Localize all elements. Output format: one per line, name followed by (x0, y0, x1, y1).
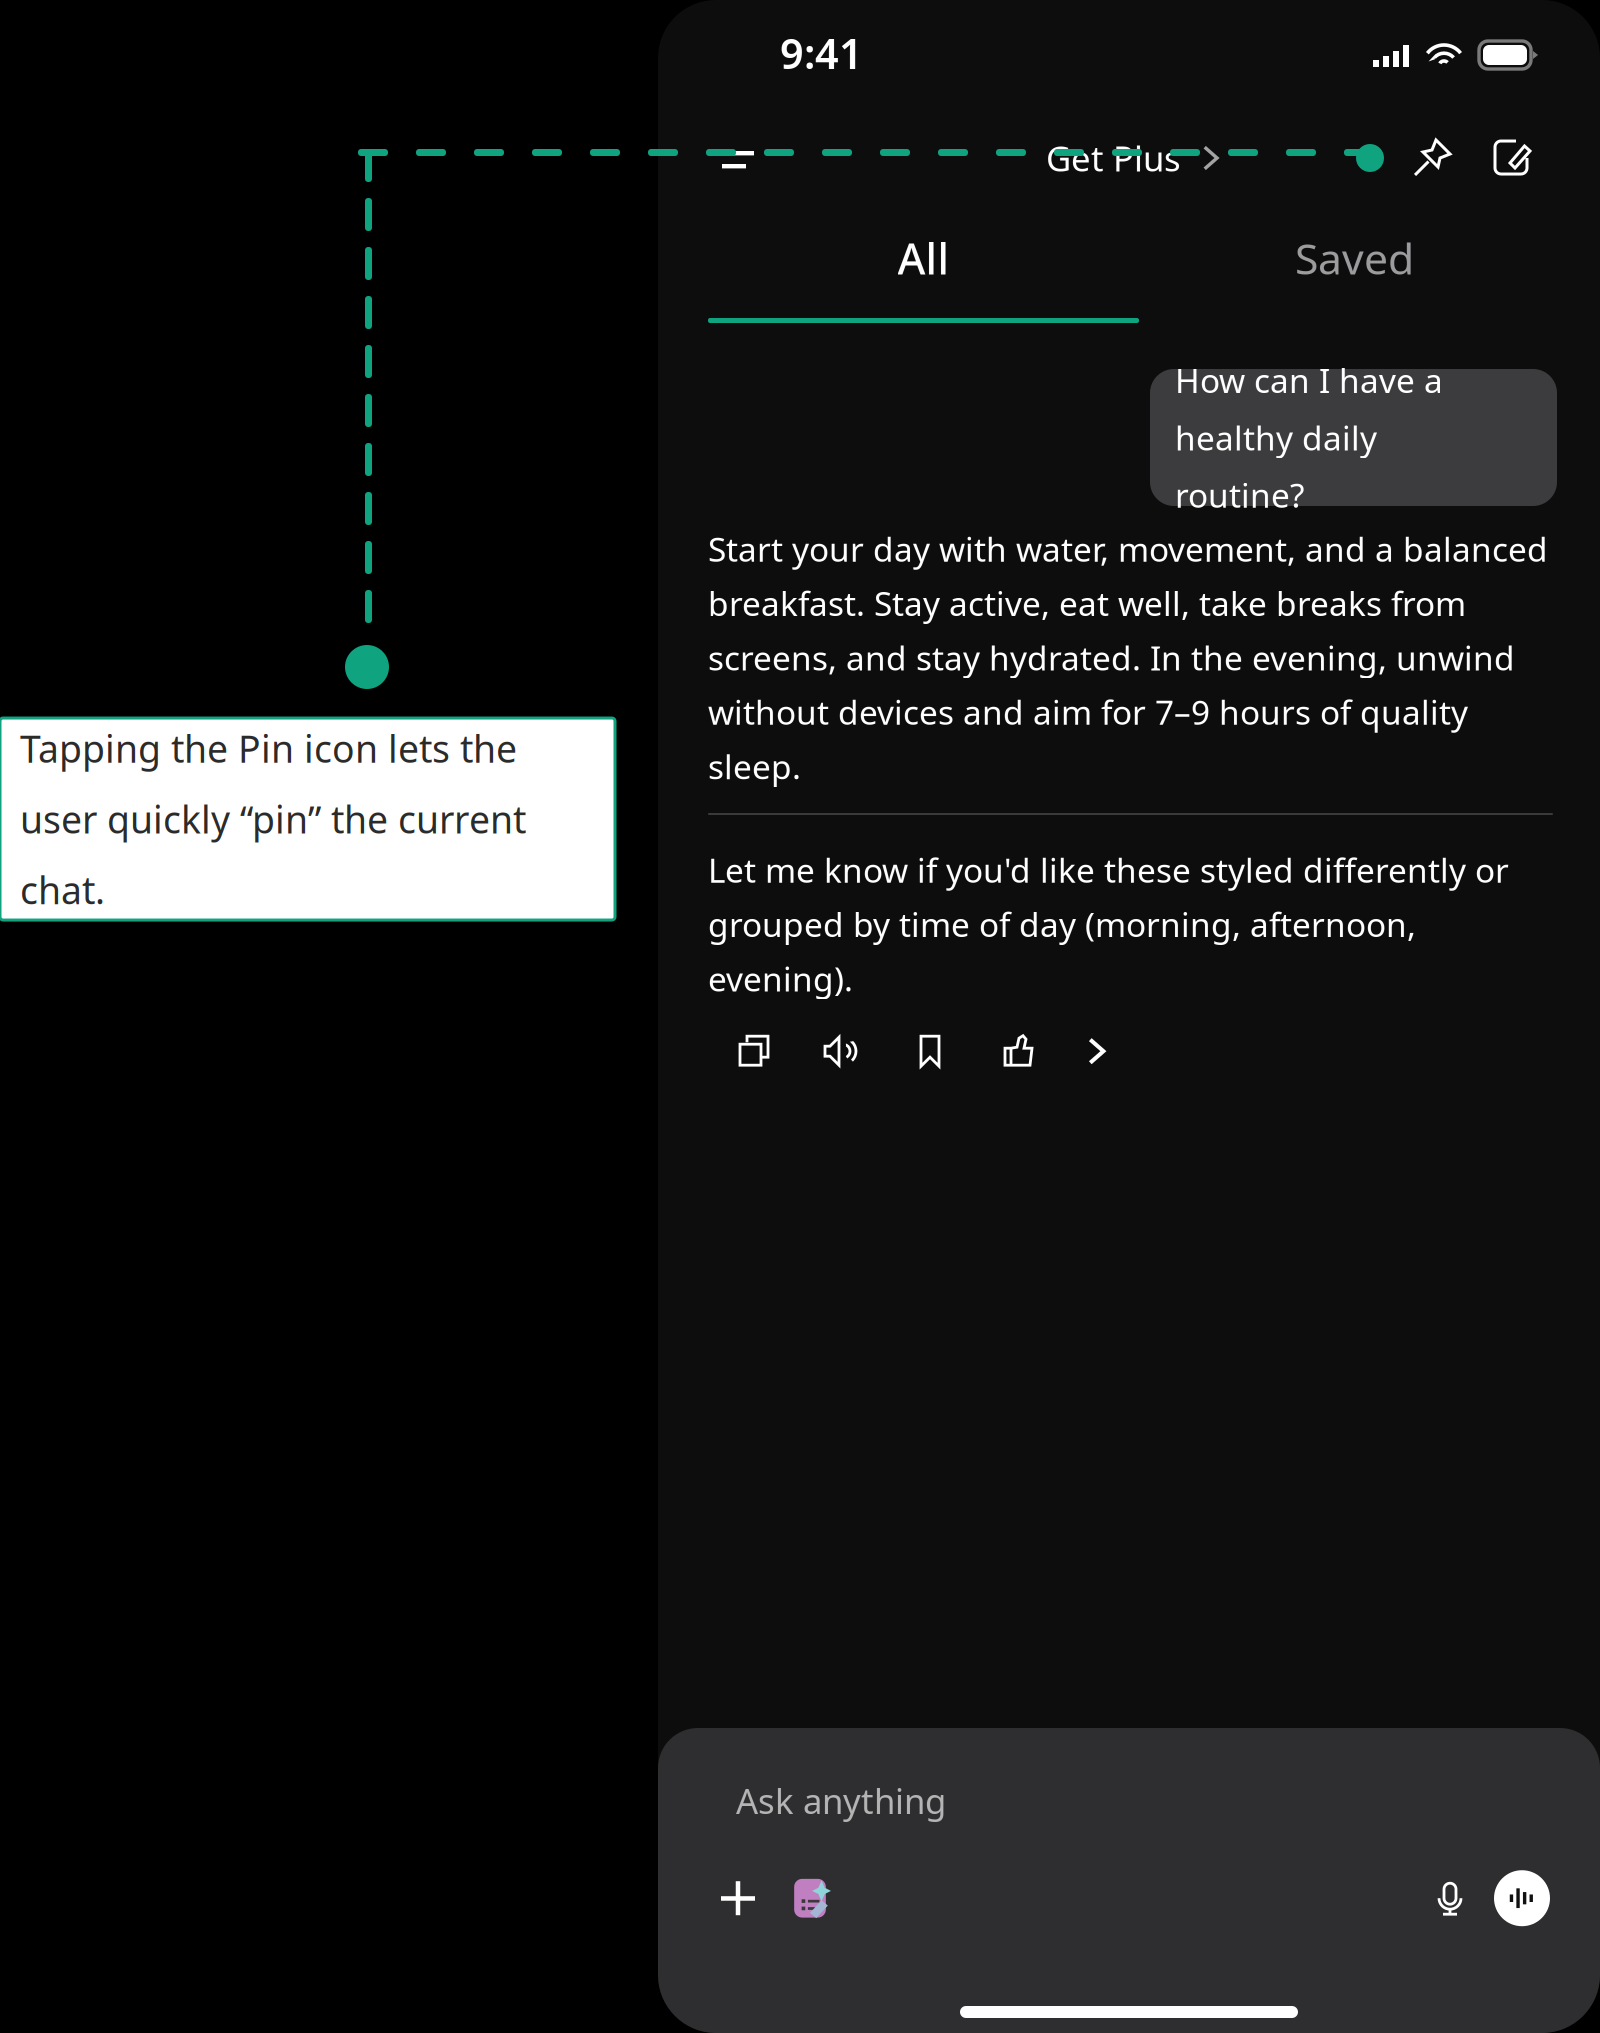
staticText: Saved (1295, 230, 1414, 286)
staticText: 9:41 (780, 26, 863, 80)
button[interactable]: Save (886, 1023, 974, 1079)
button[interactable]: Dictate (1421, 1867, 1479, 1929)
button[interactable]: Pin chat (1402, 130, 1462, 186)
staticText: Ask anything (736, 1777, 946, 1824)
staticText: Get Plus (1046, 134, 1181, 182)
button[interactable]: Saved (1139, 230, 1570, 286)
staticText: All (897, 230, 949, 286)
staticText: How can I have a healthy daily routine? (1175, 357, 1443, 518)
button[interactable]: New chat (1483, 130, 1539, 186)
staticText: Tapping the Pin icon lets the user quick… (20, 723, 526, 915)
staticText: Start your day with water, movement, and… (708, 526, 1548, 789)
button[interactable]: Sidebar (710, 130, 770, 186)
button[interactable]: All (708, 230, 1139, 286)
button[interactable]: Good response (974, 1023, 1062, 1079)
button[interactable]: More options (1062, 1023, 1132, 1079)
button[interactable]: Tools (780, 1867, 840, 1929)
button[interactable]: Copy (710, 1023, 798, 1079)
staticText: Let me know if you'd like these styled d… (708, 847, 1509, 1001)
button[interactable]: Add attachment (708, 1867, 768, 1929)
button[interactable]: Voice mode (1491, 1867, 1553, 1929)
button[interactable]: Get Plus (1046, 130, 1220, 186)
button[interactable]: Read aloud (798, 1023, 886, 1079)
